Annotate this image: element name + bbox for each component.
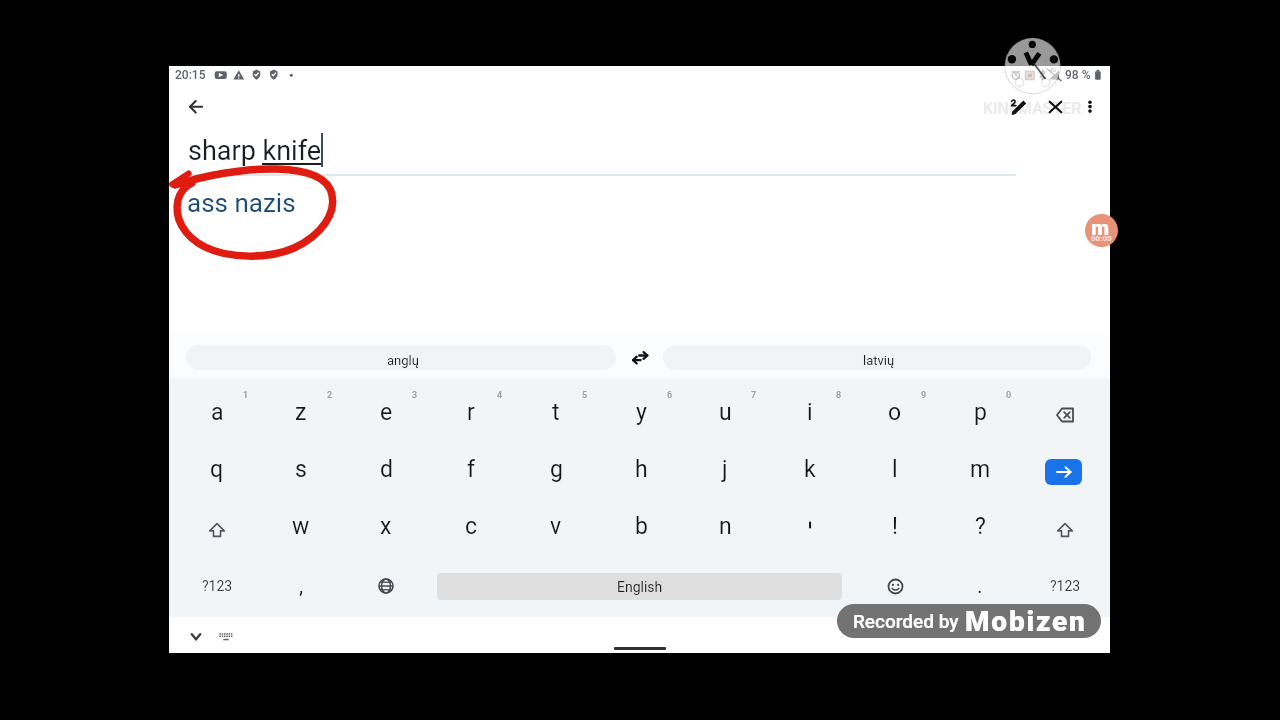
staticText: h bbox=[635, 456, 648, 483]
staticText: . bbox=[977, 574, 983, 599]
button[interactable]: g bbox=[514, 441, 598, 497]
button[interactable]: Change keyboard language bbox=[344, 558, 428, 614]
staticText: p bbox=[974, 399, 987, 426]
button[interactable]: i bbox=[768, 384, 852, 440]
staticText: English bbox=[617, 579, 663, 595]
staticText: k bbox=[804, 456, 816, 483]
staticText: ?123 bbox=[202, 578, 233, 594]
staticText: ?123 bbox=[1050, 578, 1081, 594]
button[interactable]: Apostrophe bbox=[768, 498, 852, 554]
staticText: , bbox=[299, 574, 304, 599]
button[interactable]: ? bbox=[938, 498, 1022, 554]
button[interactable]: x bbox=[344, 498, 428, 554]
staticText: t bbox=[552, 399, 560, 426]
staticText: ass nazis bbox=[187, 188, 296, 218]
staticText: y bbox=[636, 399, 647, 426]
staticText: n bbox=[719, 513, 732, 540]
staticText: 1 bbox=[243, 390, 249, 401]
staticText: r bbox=[467, 399, 475, 426]
staticText: 4 bbox=[497, 390, 503, 401]
staticText: e bbox=[380, 399, 393, 426]
staticText: Recorded by bbox=[853, 610, 959, 632]
button[interactable]: v bbox=[514, 498, 598, 554]
staticText: 0 bbox=[1006, 390, 1012, 401]
button[interactable]: ! bbox=[853, 498, 937, 554]
staticText: 7 bbox=[751, 390, 757, 401]
button[interactable]: s bbox=[259, 441, 343, 497]
button[interactable]: d bbox=[344, 441, 428, 497]
button[interactable]: a bbox=[175, 384, 259, 440]
staticText: q bbox=[210, 456, 224, 483]
button[interactable]: Back bbox=[177, 88, 215, 126]
staticText: m bbox=[970, 456, 991, 483]
button[interactable]: Backspace bbox=[1023, 387, 1107, 443]
button[interactable]: Swap languages bbox=[624, 338, 656, 370]
button[interactable]: Improve translation bbox=[1000, 88, 1038, 126]
staticText: ! bbox=[892, 513, 898, 540]
staticText: ? bbox=[975, 513, 986, 540]
button[interactable]: latvių bbox=[663, 345, 1091, 370]
staticText: l bbox=[892, 456, 898, 483]
button[interactable]: k bbox=[768, 441, 852, 497]
button[interactable]: , bbox=[259, 558, 343, 614]
button[interactable]: anglų bbox=[186, 345, 616, 370]
staticText: z bbox=[295, 399, 307, 426]
staticText: i bbox=[807, 399, 813, 426]
button[interactable]: Shift bbox=[1023, 502, 1107, 558]
button[interactable]: t bbox=[514, 384, 598, 440]
button[interactable]: Keyboard settings bbox=[211, 622, 241, 652]
staticText: s bbox=[295, 456, 307, 483]
button[interactable]: m bbox=[938, 441, 1022, 497]
button[interactable]: l bbox=[853, 441, 937, 497]
staticText: m bbox=[1091, 216, 1110, 241]
staticText: 20:15 bbox=[175, 68, 206, 82]
button[interactable]: Enter bbox=[1045, 459, 1082, 485]
button[interactable]: More options bbox=[1071, 88, 1109, 126]
staticText: 6 bbox=[667, 390, 673, 401]
button[interactable]: y bbox=[599, 384, 683, 440]
staticText: 2 bbox=[327, 390, 333, 401]
button[interactable]: h bbox=[599, 441, 683, 497]
button[interactable]: Emoji bbox=[853, 558, 937, 614]
button[interactable]: c bbox=[429, 498, 513, 554]
staticText: KINEMASTER bbox=[983, 99, 1082, 118]
button[interactable]: w bbox=[259, 498, 343, 554]
staticText: u bbox=[719, 399, 732, 426]
button[interactable]: Shift bbox=[175, 502, 259, 558]
staticText: x bbox=[380, 513, 392, 540]
button[interactable]: e bbox=[344, 384, 428, 440]
button[interactable]: j bbox=[683, 441, 767, 497]
staticText: g bbox=[550, 456, 563, 483]
staticText: 00:05 bbox=[1091, 234, 1112, 243]
staticText: f bbox=[467, 456, 475, 483]
staticText: v bbox=[550, 513, 562, 540]
button[interactable]: o bbox=[853, 384, 937, 440]
button[interactable]: ?123 bbox=[1023, 558, 1107, 614]
button[interactable]: r bbox=[429, 384, 513, 440]
staticText: latvių bbox=[863, 353, 895, 368]
button[interactable]: ?123 bbox=[175, 558, 259, 614]
button[interactable]: . bbox=[938, 558, 1022, 614]
staticText: c bbox=[465, 513, 478, 540]
staticText: 4G bbox=[1049, 66, 1057, 73]
button[interactable]: q bbox=[175, 441, 259, 497]
staticText: 5 bbox=[582, 390, 588, 401]
staticText: o bbox=[888, 399, 902, 426]
button[interactable]: Hide keyboard bbox=[181, 622, 211, 652]
staticText: d bbox=[380, 456, 393, 483]
button[interactable]: n bbox=[683, 498, 767, 554]
staticText: Mobizen bbox=[965, 605, 1087, 638]
button[interactable]: f bbox=[429, 441, 513, 497]
button[interactable]: u bbox=[683, 384, 767, 440]
staticText: sharp knife bbox=[188, 135, 322, 167]
staticText: 9 bbox=[921, 390, 927, 401]
staticText: 8 bbox=[836, 390, 842, 401]
button[interactable]: p bbox=[938, 384, 1022, 440]
staticText: b bbox=[635, 513, 648, 540]
button[interactable]: English bbox=[437, 573, 842, 600]
button[interactable]: b bbox=[599, 498, 683, 554]
button[interactable]: Clear text bbox=[1036, 88, 1074, 126]
staticText: 98 % bbox=[1065, 68, 1091, 82]
button[interactable]: z bbox=[259, 384, 343, 440]
staticText: j bbox=[722, 456, 728, 483]
